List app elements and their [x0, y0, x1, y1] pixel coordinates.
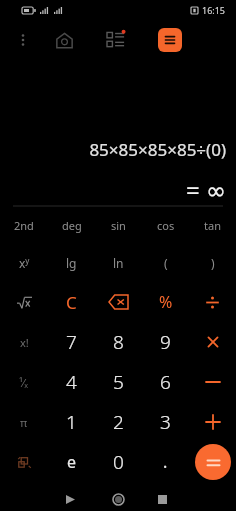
button[interactable]: Equals: [195, 444, 231, 480]
button[interactable]: 8: [95, 322, 142, 362]
button[interactable]: xy: [0, 244, 48, 282]
button[interactable]: Home: [105, 488, 131, 511]
button[interactable]: 7: [48, 322, 95, 362]
button[interactable]: More options: [8, 25, 38, 55]
other: Minus: [206, 380, 220, 384]
button[interactable]: 4: [48, 362, 95, 402]
button[interactable]: Plus: [189, 402, 236, 442]
staticText: x!: [20, 335, 29, 350]
staticText: 1: [66, 409, 77, 435]
button[interactable]: e: [48, 442, 95, 482]
staticText: %: [159, 291, 173, 313]
button[interactable]: 2: [95, 402, 142, 442]
staticText: sin: [111, 218, 126, 233]
button[interactable]: Home: [48, 24, 80, 56]
button[interactable]: ln: [95, 244, 142, 282]
staticText: tan: [204, 218, 221, 233]
other: Multiply: [207, 336, 219, 348]
button[interactable]: 9: [142, 322, 189, 362]
button[interactable]: Back: [57, 488, 83, 511]
button[interactable]: .: [142, 442, 189, 482]
staticText: 2nd: [14, 218, 34, 233]
button[interactable]: Formulas: [0, 442, 48, 482]
staticText: xy: [19, 255, 30, 271]
staticText: = ∞: [186, 173, 226, 206]
staticText: (: [164, 255, 168, 271]
staticText: 16:15: [202, 4, 226, 16]
staticText: e: [67, 451, 77, 473]
button[interactable]: tan: [189, 206, 236, 244]
other: Plus: [206, 415, 220, 429]
button[interactable]: deg: [48, 206, 95, 244]
staticText: π: [20, 415, 28, 430]
button[interactable]: Divide: [189, 282, 236, 322]
staticText: 5: [113, 369, 124, 395]
staticText: 85×85×85×85÷(0): [89, 138, 226, 161]
staticText: 8: [113, 329, 124, 355]
staticText: 9: [160, 329, 171, 355]
button[interactable]: Unit converter: [100, 24, 132, 56]
button[interactable]: C: [48, 282, 95, 322]
button[interactable]: 2nd: [0, 206, 48, 244]
other: Square root: [17, 296, 32, 309]
staticText: cos: [157, 218, 175, 233]
button[interactable]: lg: [48, 244, 95, 282]
staticText: 6: [160, 369, 171, 395]
button[interactable]: Recents: [149, 488, 175, 511]
staticText: .: [163, 451, 168, 473]
button[interactable]: (: [142, 244, 189, 282]
button[interactable]: cos: [142, 206, 189, 244]
staticText: C: [66, 291, 77, 314]
staticText: ): [211, 255, 215, 271]
button[interactable]: π: [0, 402, 48, 442]
button[interactable]: sin: [95, 206, 142, 244]
button[interactable]: Multiply: [189, 322, 236, 362]
button[interactable]: 6: [142, 362, 189, 402]
staticText: lg: [66, 255, 77, 271]
staticText: ln: [113, 255, 124, 271]
other: Divide: [205, 295, 220, 310]
button[interactable]: ): [189, 244, 236, 282]
staticText: 4: [66, 369, 77, 395]
button[interactable]: 5: [95, 362, 142, 402]
staticText: deg: [62, 218, 82, 233]
button[interactable]: Square root: [0, 282, 48, 322]
staticText: ¹⁄ₓ: [19, 375, 29, 390]
staticText: 2: [113, 409, 124, 435]
button[interactable]: ¹⁄ₓ: [0, 362, 48, 402]
button[interactable]: Minus: [189, 362, 236, 402]
button[interactable]: x!: [0, 322, 48, 362]
button[interactable]: 3: [142, 402, 189, 442]
staticText: 0: [113, 449, 124, 475]
button[interactable]: Backspace: [95, 282, 142, 322]
button[interactable]: 0: [95, 442, 142, 482]
staticText: 7: [66, 329, 77, 355]
other: Backspace: [109, 295, 128, 309]
staticText: 3: [160, 409, 171, 435]
button[interactable]: %: [142, 282, 189, 322]
button[interactable]: History: [158, 28, 182, 52]
other: Formulas: [17, 455, 32, 470]
button[interactable]: 1: [48, 402, 95, 442]
